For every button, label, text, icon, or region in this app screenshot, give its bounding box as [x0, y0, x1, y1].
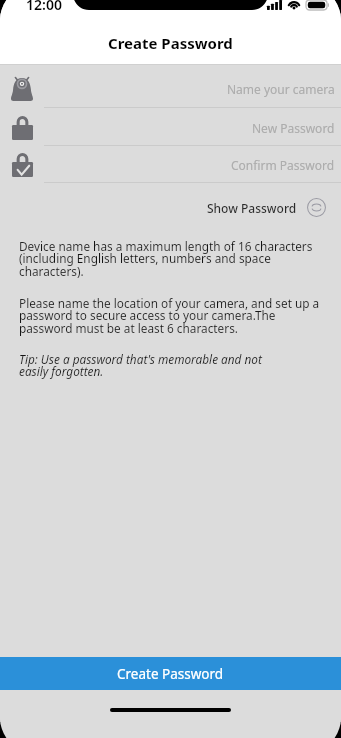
staticText: New Password	[252, 120, 335, 136]
button[interactable]: Show Password	[193, 198, 341, 217]
button[interactable]: Confirm Password	[0, 146, 341, 182]
staticText: Create Password	[117, 665, 224, 683]
staticText: Tip: Use a password that's memorable and…	[19, 351, 262, 380]
staticText: Confirm Password	[231, 157, 335, 173]
button[interactable]: New Password	[0, 108, 341, 145]
button[interactable]: Create Password	[0, 657, 341, 690]
staticText: 12:00	[26, 0, 62, 14]
button[interactable]: Show Password	[307, 198, 326, 217]
button[interactable]: Name your camera	[0, 65, 341, 107]
staticText: Name your camera	[227, 81, 335, 97]
staticText: Show Password	[207, 200, 297, 216]
staticText: Device name has a maximum length of 16 c…	[19, 238, 313, 280]
staticText: Create Password	[108, 33, 233, 53]
staticText: Please name the location of your camera,…	[19, 295, 320, 337]
